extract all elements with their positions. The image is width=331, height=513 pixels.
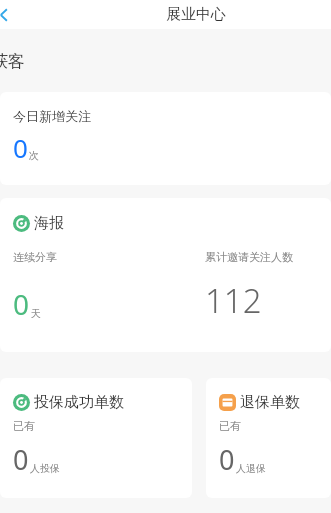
staticText: 获客 bbox=[0, 51, 25, 72]
button[interactable]: 退保单数 bbox=[206, 378, 331, 498]
staticText: 连续分享 bbox=[13, 250, 57, 264]
staticText: 112 bbox=[205, 278, 262, 323]
staticText: 0 bbox=[13, 441, 29, 478]
staticText: 已有 bbox=[13, 419, 35, 433]
staticText: 次 bbox=[29, 149, 39, 162]
staticText: 人退保 bbox=[236, 462, 266, 475]
staticText: 今日新增关注 bbox=[13, 108, 91, 124]
staticText: 0 bbox=[13, 285, 30, 323]
staticText: 展业中心 bbox=[166, 5, 226, 24]
staticText: 0 bbox=[13, 130, 28, 165]
staticText: 0 bbox=[219, 441, 235, 478]
staticText: 已有 bbox=[219, 419, 241, 433]
button[interactable]: 今日新增关注 bbox=[0, 92, 331, 185]
staticText: 累计邀请关注人数 bbox=[205, 250, 293, 264]
staticText: 人投保 bbox=[30, 462, 60, 475]
staticText: 投保成功单数 bbox=[34, 393, 124, 412]
button[interactable]: Back bbox=[0, 0, 19, 29]
staticText: 天 bbox=[31, 307, 41, 320]
staticText: 海报 bbox=[34, 214, 64, 233]
button[interactable]: 投保成功单数 bbox=[0, 378, 192, 498]
staticText: 退保单数 bbox=[240, 393, 300, 412]
button[interactable]: 海报 bbox=[0, 198, 331, 352]
